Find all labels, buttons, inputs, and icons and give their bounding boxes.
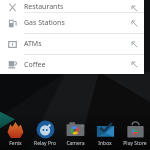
button[interactable]: Restaurants <box>0 0 144 12</box>
button[interactable]: Gas Stations <box>0 13 144 33</box>
staticText: Restaurants <box>24 2 64 12</box>
staticText: Inbox <box>98 140 112 147</box>
button[interactable]: ATMs <box>0 34 144 54</box>
button[interactable]: Coffee <box>0 55 144 74</box>
staticText: Camera <box>66 140 85 147</box>
staticText: Relay Pro <box>34 140 56 147</box>
button[interactable]: Camera <box>60 120 90 147</box>
staticText: Play Store <box>123 140 147 147</box>
other: Insert Restaurants <box>131 5 138 12</box>
staticText: Fenix <box>9 140 22 147</box>
staticText: Gas Stations <box>24 18 65 28</box>
staticText: Coffee <box>24 60 46 70</box>
button[interactable]: Play Store <box>120 120 150 147</box>
button[interactable]: Relay Pro <box>30 120 60 147</box>
button[interactable]: Fenix <box>0 120 30 147</box>
other: Insert Coffee <box>131 61 138 68</box>
staticText: ATMs <box>24 39 42 49</box>
button[interactable]: Inbox <box>90 120 120 147</box>
other: Insert Gas Stations <box>131 20 138 27</box>
other: Insert ATMs <box>131 41 138 48</box>
